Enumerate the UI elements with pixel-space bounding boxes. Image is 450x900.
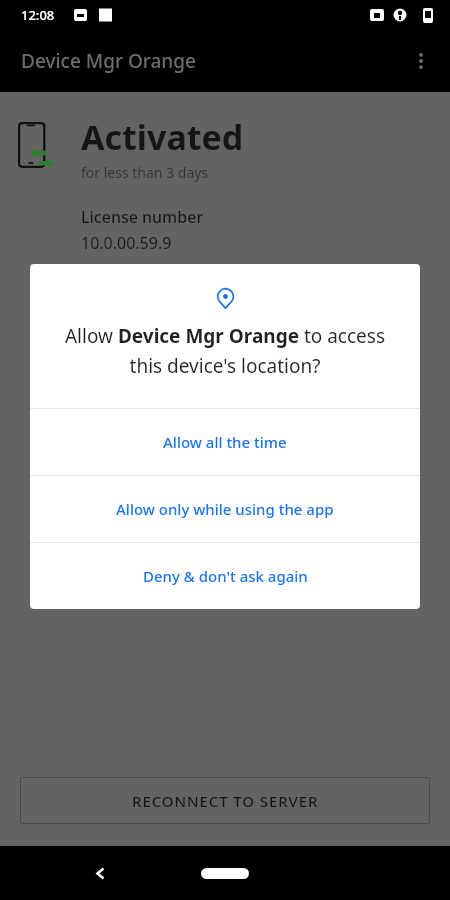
staticText: Deny & don't ask again <box>143 566 308 586</box>
button[interactable]: Allow all the time <box>30 409 420 475</box>
staticText: 10.0.00.59.9 <box>81 232 172 254</box>
button[interactable]: More options <box>399 39 443 83</box>
button[interactable]: RECONNECT TO SERVER <box>20 777 430 824</box>
button[interactable]: Allow only while using the app <box>30 476 420 542</box>
staticText: Device Mgr Orange <box>21 48 196 74</box>
staticText: Activated <box>81 114 244 160</box>
staticText: 12:08 <box>21 6 55 24</box>
button[interactable]: Back <box>78 851 122 895</box>
button[interactable]: Deny & don't ask again <box>30 543 420 609</box>
staticText: License number <box>81 206 204 228</box>
staticText: Allow Device Mgr Orange to access this d… <box>52 323 398 378</box>
staticText: Allow only while using the app <box>116 499 334 519</box>
staticText: Allow all the time <box>163 432 287 452</box>
staticText: RECONNECT TO SERVER <box>132 791 319 811</box>
button[interactable]: Home <box>195 851 255 895</box>
staticText: for less than 3 days <box>81 163 209 182</box>
